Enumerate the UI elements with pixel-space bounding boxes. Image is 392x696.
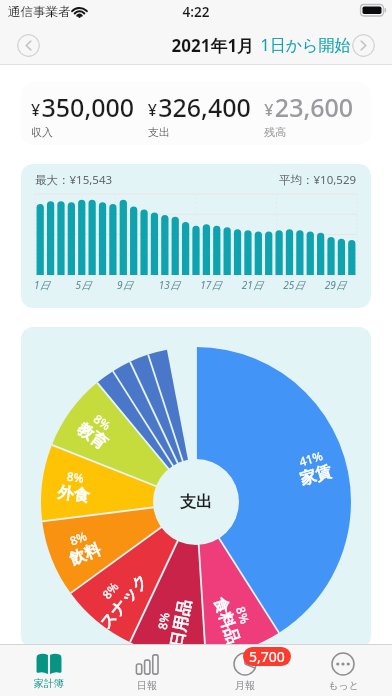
staticText: 日報 [137, 679, 157, 692]
staticText: 月報 [235, 679, 255, 692]
staticText: 5,700 [249, 647, 285, 666]
button[interactable]: 日報 [98, 645, 196, 696]
button[interactable]: もっと [294, 645, 392, 696]
staticText: 家計簿 [34, 677, 64, 690]
button[interactable] [21, 164, 371, 308]
button[interactable]: 月報 [196, 645, 294, 696]
button[interactable] [21, 327, 371, 648]
staticText: もっと [328, 679, 359, 692]
button[interactable]: Next month [352, 34, 375, 57]
button[interactable]: 家計簿 [0, 645, 98, 696]
button[interactable] [21, 82, 371, 145]
button[interactable]: Previous month [17, 34, 40, 57]
